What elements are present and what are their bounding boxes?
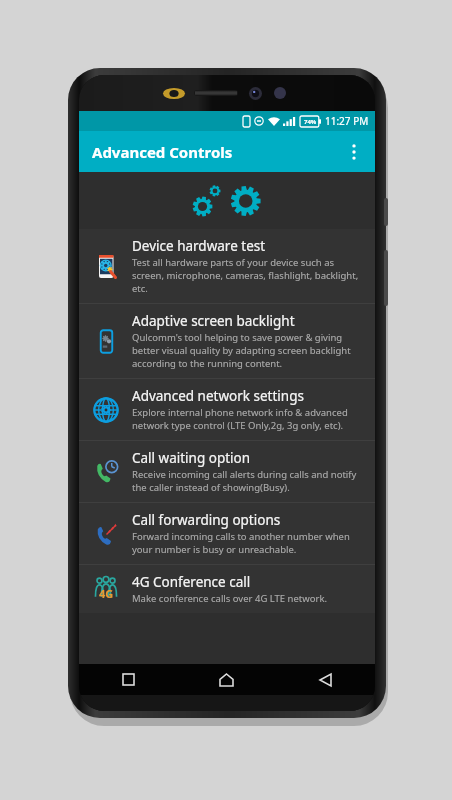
staticText: Adaptive screen backlight (132, 312, 295, 330)
button[interactable]: Device hardware test (79, 229, 375, 303)
button[interactable]: 4G (79, 565, 375, 613)
staticText: Test all hardware parts of your device s… (132, 256, 364, 295)
staticText: Advanced Controls (92, 142, 233, 162)
button[interactable]: Recent apps (79, 664, 177, 695)
button[interactable]: Home (177, 664, 276, 695)
staticText: Receive incoming call alerts during call… (132, 468, 364, 494)
button[interactable]: Call forwarding options (79, 503, 375, 564)
staticText: 74% (304, 118, 317, 126)
staticText: 4G Conference call (132, 573, 251, 591)
staticText: Explore internal phone network info & ad… (132, 406, 364, 432)
staticText: Call waiting option (132, 449, 251, 467)
staticText: 11:27 PM (325, 114, 369, 128)
staticText: Device hardware test (132, 237, 266, 255)
staticText: Qulcomm's tool helping to save power & g… (132, 331, 364, 370)
staticText: Advanced network settings (132, 387, 304, 405)
staticText: Make conference calls over 4G LTE networ… (132, 592, 328, 605)
button[interactable]: Advanced network settings (79, 379, 375, 440)
staticText: Forward incoming calls to another number… (132, 530, 364, 556)
button[interactable]: More options (337, 135, 371, 169)
button[interactable]: Call waiting option (79, 441, 375, 502)
staticText: Call forwarding options (132, 511, 281, 529)
button[interactable]: Back (276, 664, 375, 695)
button[interactable]: Adaptive screen backlight (79, 304, 375, 378)
staticText: 4G (99, 586, 114, 601)
